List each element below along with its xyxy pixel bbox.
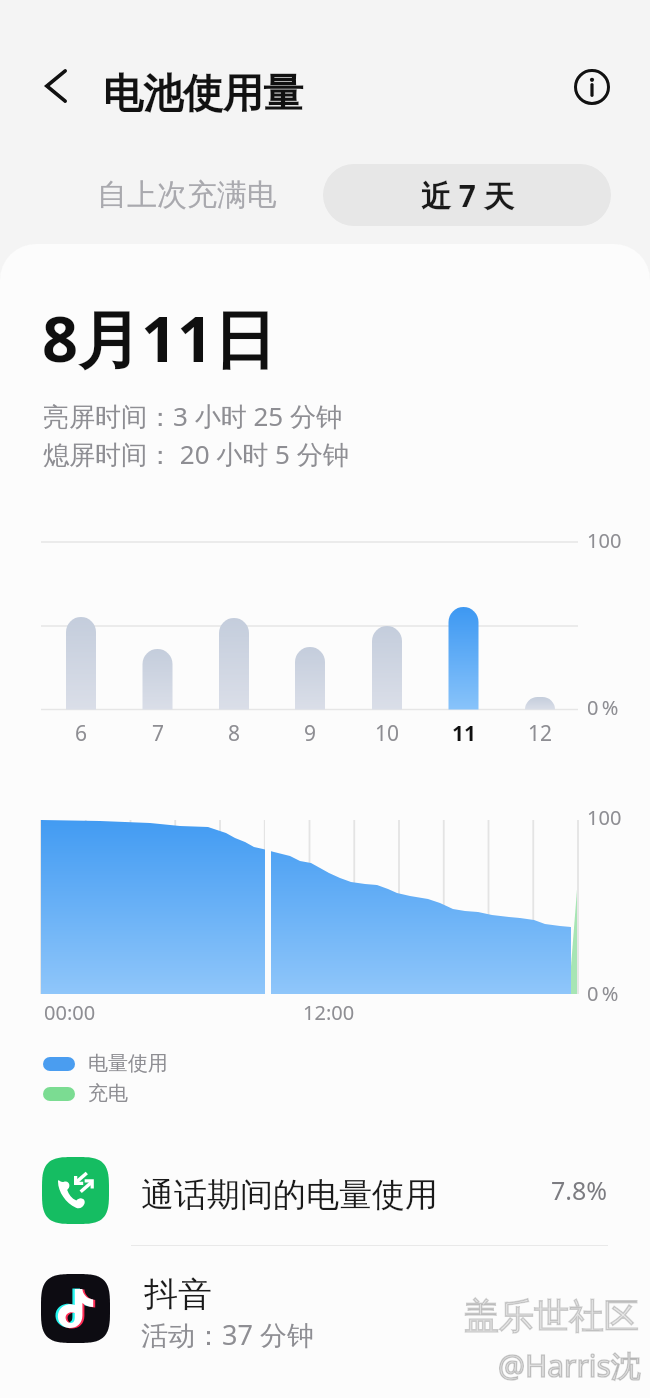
button[interactable]: 近 7 天	[323, 164, 611, 226]
staticText: 亮屏时间：3 小时 25 分钟	[43, 398, 342, 434]
button[interactable]: Information	[566, 61, 618, 113]
staticText: 100	[587, 527, 622, 554]
staticText: 活动：37 分钟	[141, 1316, 314, 1353]
button[interactable]: 自上次充满电	[56, 164, 318, 226]
staticText: 00:00	[44, 999, 96, 1026]
staticText: 电池使用量	[103, 68, 303, 118]
staticText: 自上次充满电	[97, 176, 277, 214]
staticText: 6	[75, 719, 88, 748]
staticText: 7.8%	[551, 1173, 608, 1207]
staticText: 近 7 天	[421, 175, 514, 216]
staticText: 通话期间的电量使用	[141, 1174, 438, 1216]
staticText: @Harris沈	[498, 1345, 641, 1386]
staticText: 100	[587, 804, 622, 831]
staticText: 电量使用	[88, 1051, 168, 1076]
staticText: 抖音	[144, 1273, 212, 1316]
staticText: 12:00	[303, 999, 355, 1026]
staticText: 8	[228, 719, 241, 748]
staticText: 盖乐世社区	[464, 1294, 639, 1338]
staticText: 11	[452, 719, 477, 748]
staticText: 8月11日	[42, 295, 277, 381]
staticText: 10	[375, 719, 400, 748]
button[interactable]: 抖音	[0, 1248, 650, 1378]
staticText: 充电	[88, 1081, 128, 1106]
staticText: 7	[152, 719, 165, 748]
staticText: 0 %	[587, 980, 619, 1007]
button[interactable]: 通话期间的电量使用	[0, 1138, 650, 1242]
staticText: 0 %	[587, 694, 619, 721]
staticText: 12	[528, 719, 553, 748]
staticText: 盖乐世社区	[464, 1294, 639, 1338]
button[interactable]: Back	[32, 62, 80, 110]
staticText: 9	[304, 719, 317, 748]
staticText: 熄屏时间： 20 小时 5 分钟	[43, 436, 349, 472]
staticText: @Harris沈	[498, 1345, 641, 1386]
